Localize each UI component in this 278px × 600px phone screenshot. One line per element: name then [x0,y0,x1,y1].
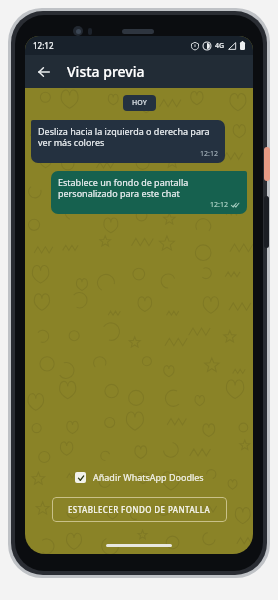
staticText: 12:12 [210,200,228,210]
staticText: 4G [215,41,225,51]
staticText: Vista previa [67,62,145,81]
staticText: 12:12 [200,149,218,159]
staticText: 12:12 [33,40,54,51]
staticText: Añadir WhatsApp Doodles [93,471,204,483]
button[interactable]: Añadir WhatsApp Doodles [25,471,253,483]
button[interactable]: Establece un fondo de pantalla personali… [51,171,247,214]
button[interactable]: Atrás [31,59,57,85]
staticText: Establece un fondo de pantalla personali… [58,176,240,200]
staticText: Desliza hacia la izquierda o derecha par… [38,125,218,149]
staticText: ESTABLECER FONDO DE PANTALLA [68,504,211,515]
button[interactable]: Desliza hacia la izquierda o derecha par… [31,120,225,163]
button[interactable]: ESTABLECER FONDO DE PANTALLA [52,497,227,522]
staticText: HOY [132,98,147,108]
